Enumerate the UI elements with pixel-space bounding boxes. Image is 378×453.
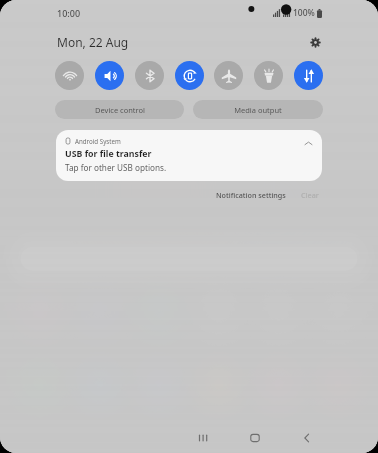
button[interactable]: Device control: [55, 100, 184, 119]
button[interactable]: Flashlight: [254, 61, 283, 90]
staticText: 100%: [293, 7, 315, 19]
button[interactable]: Media output: [193, 100, 323, 119]
staticText: Device control: [95, 105, 145, 115]
button[interactable]: Back: [296, 427, 318, 449]
staticText: Clear: [301, 190, 319, 200]
button[interactable]: Recent apps: [192, 427, 214, 449]
staticText: USB for file transfer: [65, 148, 152, 160]
button[interactable]: Notification settings: [213, 188, 289, 202]
button[interactable]: Airplane mode: [214, 61, 243, 90]
staticText: Notification settings: [216, 190, 286, 200]
button[interactable]: Android System: [56, 130, 322, 181]
button[interactable]: Settings: [305, 32, 325, 52]
button[interactable]: Collapse notification: [302, 137, 314, 149]
staticText: Mon, 22 Aug: [57, 34, 129, 50]
staticText: Android System: [75, 137, 121, 145]
button[interactable]: Mobile data: [294, 61, 323, 90]
staticText: 10:00: [57, 7, 81, 19]
staticText: Media output: [234, 105, 282, 115]
button[interactable]: Bluetooth: [135, 61, 164, 90]
button[interactable]: Auto rotate: [175, 61, 204, 90]
button[interactable]: Clear: [298, 188, 322, 202]
button[interactable]: Sound: [95, 61, 124, 90]
staticText: Tap for other USB options.: [65, 162, 167, 173]
button[interactable]: Wi-Fi: [55, 61, 84, 90]
button[interactable]: Home: [244, 427, 266, 449]
